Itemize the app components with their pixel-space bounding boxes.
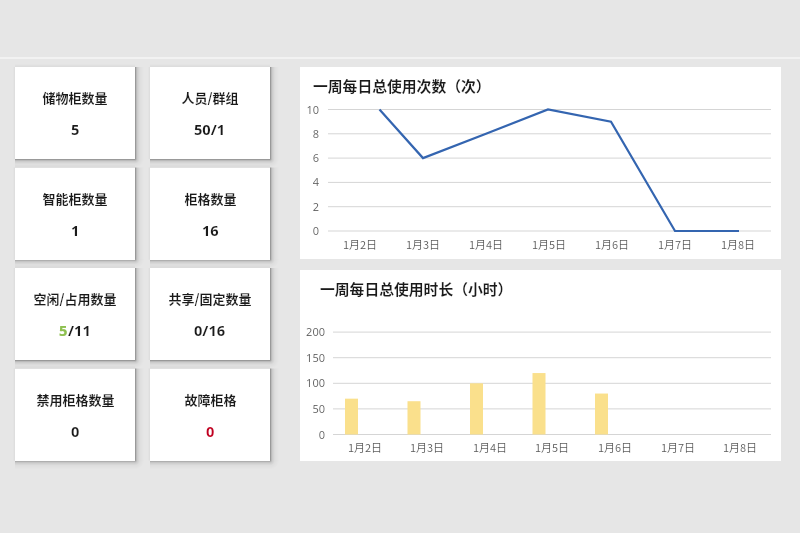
staticText: 共享/固定数量 bbox=[168, 289, 252, 308]
staticText: 0 bbox=[71, 421, 80, 441]
staticText: /11 bbox=[68, 320, 91, 340]
staticText: 1月6日 bbox=[590, 439, 640, 455]
staticText: 人员/群组 bbox=[181, 88, 239, 107]
staticText: 1月7日 bbox=[650, 236, 700, 252]
staticText: 1月3日 bbox=[402, 439, 452, 455]
staticText: 一周每日总使用时长（小时） bbox=[320, 278, 513, 299]
staticText: 1月8日 bbox=[713, 236, 763, 252]
staticText: 150 bbox=[300, 350, 325, 365]
staticText: 智能柜数量 bbox=[42, 189, 108, 208]
staticText: 1月2日 bbox=[340, 439, 390, 455]
staticText: 2 bbox=[300, 199, 319, 214]
staticText: 4 bbox=[300, 174, 319, 189]
staticText: 故障柜格 bbox=[184, 390, 237, 409]
staticText: 6 bbox=[300, 150, 319, 165]
staticText: 1月5日 bbox=[527, 439, 577, 455]
staticText: 1月5日 bbox=[524, 236, 574, 252]
staticText: 0 bbox=[300, 427, 325, 442]
staticText: 一周每日总使用次数（次） bbox=[313, 75, 491, 96]
staticText: 1月7日 bbox=[653, 439, 703, 455]
staticText: 1月3日 bbox=[398, 236, 448, 252]
staticText: 柜格数量 bbox=[184, 189, 237, 208]
staticText: 200 bbox=[300, 324, 325, 339]
staticText: 0 bbox=[300, 223, 319, 238]
staticText: 100 bbox=[300, 375, 325, 390]
staticText: 8 bbox=[300, 126, 319, 141]
staticText: 10 bbox=[300, 102, 319, 117]
staticText: 1月2日 bbox=[335, 236, 385, 252]
button[interactable]: 共享/固定数量 bbox=[150, 268, 270, 360]
staticText: 0 bbox=[206, 421, 215, 441]
button[interactable]: 智能柜数量 bbox=[15, 168, 135, 260]
button[interactable]: 禁用柜格数量 bbox=[15, 369, 135, 461]
staticText: 16 bbox=[202, 220, 219, 240]
button[interactable]: 储物柜数量 bbox=[15, 67, 135, 159]
staticText: 5 bbox=[59, 320, 68, 340]
staticText: 0/16 bbox=[194, 320, 226, 340]
button[interactable]: 人员/群组 bbox=[150, 67, 270, 159]
staticText: 50 bbox=[300, 401, 325, 416]
button[interactable]: 柜格数量 bbox=[150, 168, 270, 260]
staticText: 储物柜数量 bbox=[42, 88, 108, 107]
staticText: 50/1 bbox=[194, 119, 226, 139]
staticText: 1月4日 bbox=[465, 439, 515, 455]
staticText: 1月8日 bbox=[715, 439, 765, 455]
staticText: 1 bbox=[71, 220, 80, 240]
staticText: 1月6日 bbox=[587, 236, 637, 252]
button[interactable]: 空闲/占用数量 bbox=[15, 268, 135, 360]
button[interactable]: 故障柜格 bbox=[150, 369, 270, 461]
staticText: 1月4日 bbox=[461, 236, 511, 252]
staticText: 5 bbox=[71, 119, 80, 139]
staticText: 空闲/占用数量 bbox=[33, 289, 117, 308]
staticText: 禁用柜格数量 bbox=[36, 390, 115, 409]
